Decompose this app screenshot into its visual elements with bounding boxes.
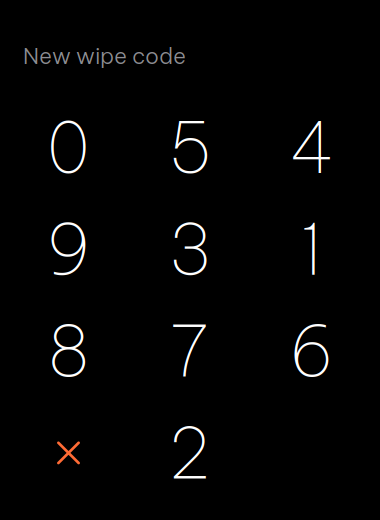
staticText: 1 xyxy=(300,205,322,293)
staticText: 6 xyxy=(289,307,334,395)
button[interactable]: 5 xyxy=(129,97,251,198)
staticText: 5 xyxy=(167,104,212,191)
button[interactable]: 7 xyxy=(129,300,251,402)
button[interactable]: 3 xyxy=(129,198,251,300)
button[interactable]: 4 xyxy=(251,97,372,198)
staticText: New wipe code xyxy=(23,42,186,70)
button[interactable]: 0 xyxy=(8,97,129,198)
button[interactable]: 6 xyxy=(251,300,372,402)
staticText: 8 xyxy=(47,307,90,395)
staticText: 7 xyxy=(170,307,210,395)
button[interactable]: 2 xyxy=(129,402,251,504)
staticText: 3 xyxy=(168,205,211,293)
staticText: 2 xyxy=(169,409,210,497)
staticText: 0 xyxy=(47,104,90,191)
staticText: 4 xyxy=(290,104,332,191)
button[interactable]: 9 xyxy=(8,198,129,300)
button[interactable]: Delete xyxy=(8,402,129,504)
staticText: 9 xyxy=(46,205,91,293)
button[interactable]: 8 xyxy=(8,300,129,402)
button[interactable]: 1 xyxy=(251,198,372,300)
